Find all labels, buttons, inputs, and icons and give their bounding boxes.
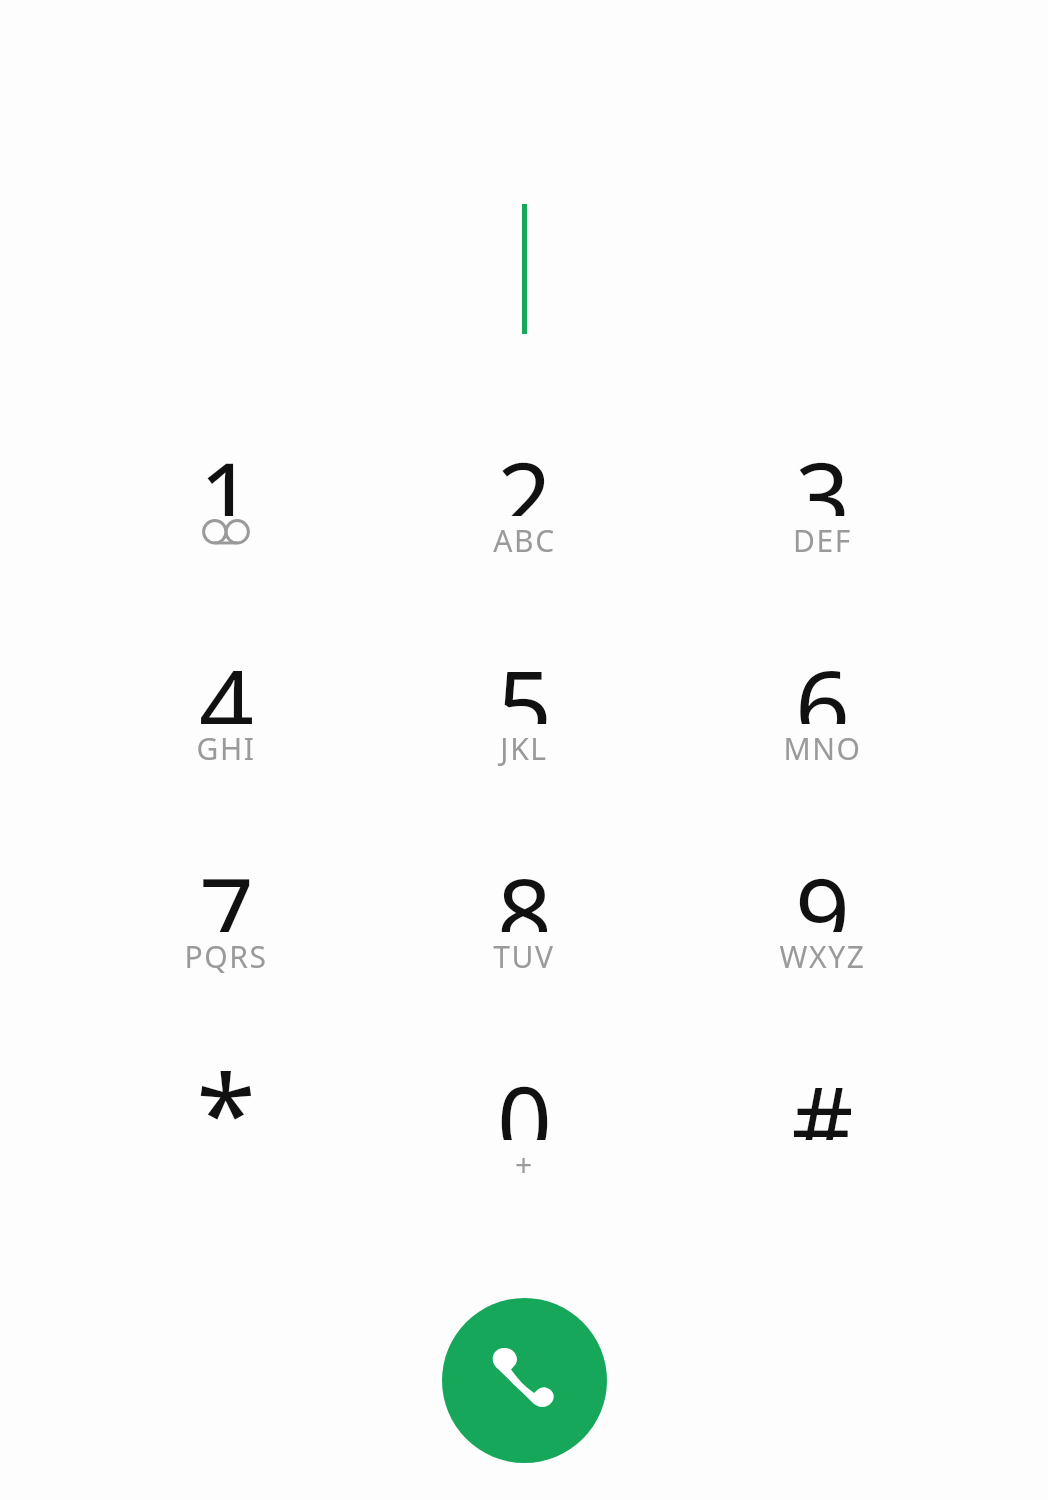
staticText: DEF [793, 520, 852, 561]
button[interactable]: 8 [375, 846, 673, 1054]
staticText: 2 [497, 430, 552, 516]
staticText: * [196, 1038, 256, 1124]
staticText: + [515, 1144, 534, 1185]
button[interactable]: 4 [77, 638, 375, 846]
staticText: 7 [199, 846, 254, 932]
button[interactable]: 1 [77, 430, 375, 638]
button[interactable]: 0 [375, 1054, 673, 1262]
button[interactable]: 7 [77, 846, 375, 1054]
staticText: 6 [795, 638, 850, 724]
staticText: 8 [497, 846, 552, 932]
staticText: 3 [795, 430, 850, 516]
staticText: GHI [196, 728, 256, 769]
button[interactable]: 5 [375, 638, 673, 846]
button[interactable]: * [77, 1054, 375, 1262]
button[interactable]: Call [442, 1298, 607, 1463]
button[interactable]: 6 [673, 638, 971, 846]
button[interactable]: 9 [673, 846, 971, 1054]
staticText: JKL [500, 728, 548, 769]
staticText: 5 [497, 638, 552, 724]
staticText: 9 [795, 846, 850, 932]
staticText: # [791, 1054, 854, 1140]
staticText: TUV [493, 936, 555, 977]
staticText: PQRS [184, 936, 268, 977]
staticText: 4 [199, 638, 254, 724]
staticText: 0 [497, 1054, 552, 1140]
staticText: ABC [493, 520, 556, 561]
staticText: MNO [783, 728, 862, 769]
staticText: 1 [199, 430, 254, 516]
button[interactable]: 3 [673, 430, 971, 638]
staticText: WXYZ [779, 936, 866, 977]
button[interactable]: # [673, 1054, 971, 1262]
button[interactable]: 2 [375, 430, 673, 638]
